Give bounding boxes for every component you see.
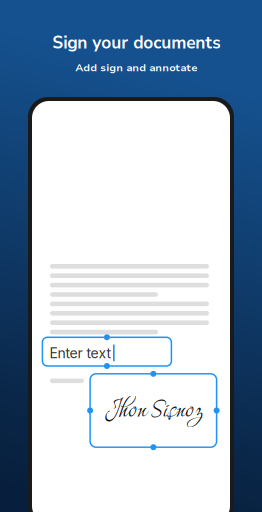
staticText: Enter text| [49,345,116,362]
staticText: Jhon Sisnoz [105,388,202,428]
button[interactable]: Jhon Sisnoz [87,371,220,450]
button[interactable]: Enter text| [39,334,174,369]
staticText: Add sign and annotate [75,61,197,75]
staticText: Sign your documents [52,31,220,55]
